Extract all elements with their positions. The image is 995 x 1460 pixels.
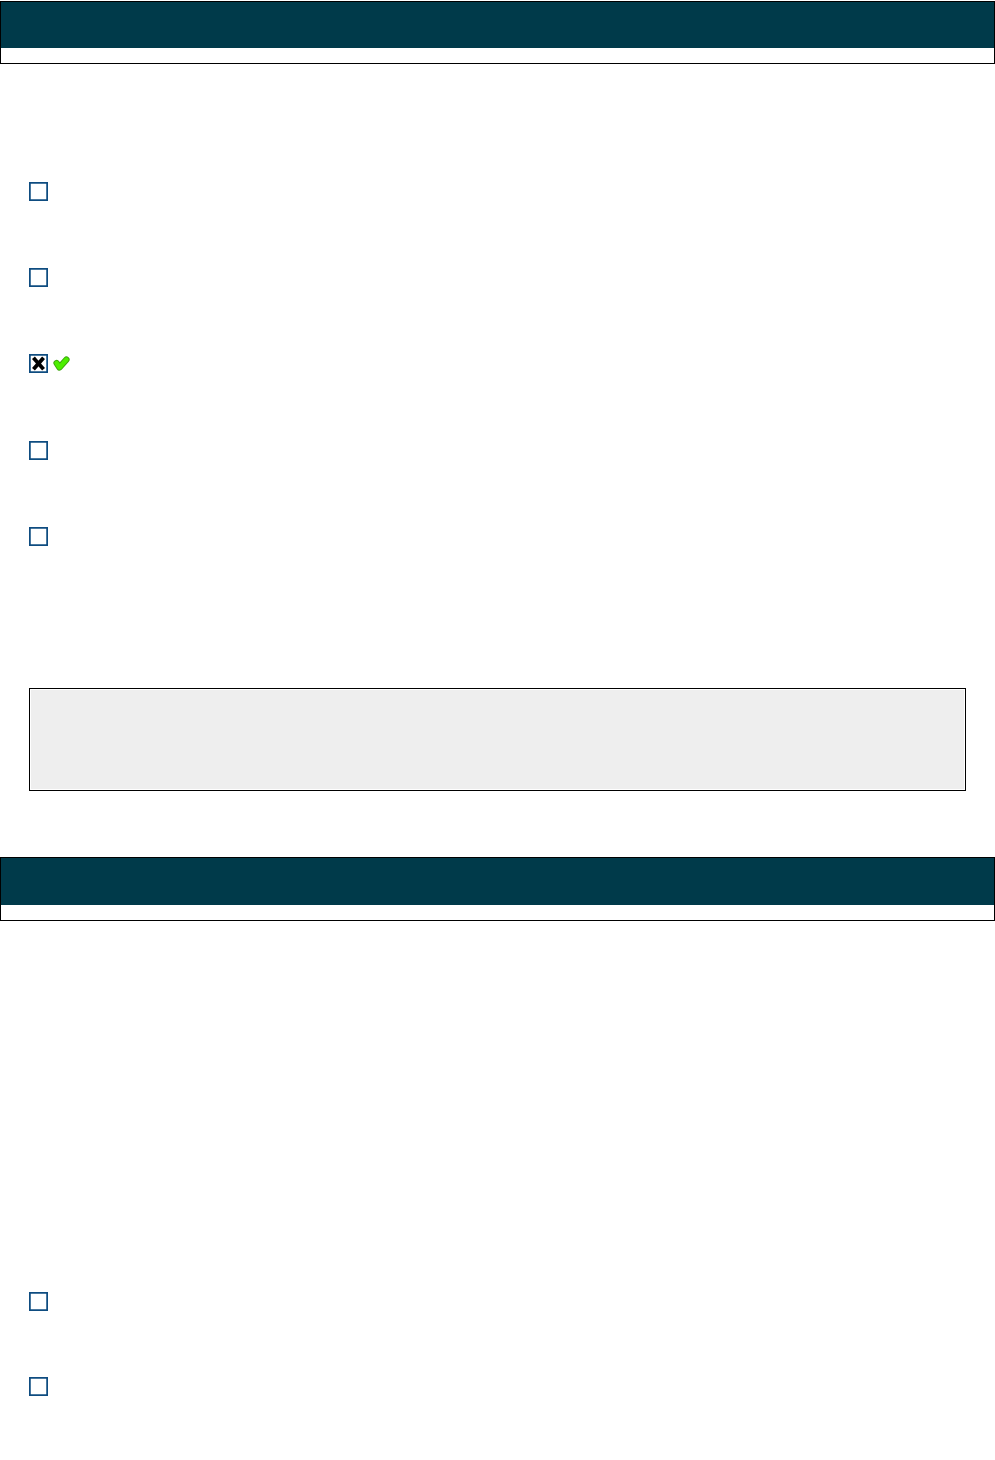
button[interactable]: Answer option checkbox	[29, 441, 48, 460]
button[interactable]: Answer option checkbox	[29, 1377, 48, 1396]
button[interactable]: Answer option checkbox	[29, 182, 48, 201]
button[interactable]	[1, 2, 994, 63]
button[interactable]	[1, 858, 994, 920]
button[interactable]: Answer option checkbox	[29, 527, 48, 546]
other: Correct answer	[53, 356, 70, 371]
button[interactable]: Answer option checkbox	[29, 1292, 48, 1311]
button[interactable]: Answer option checkbox	[29, 268, 48, 287]
button[interactable]: Selected answer checkbox	[29, 354, 48, 373]
